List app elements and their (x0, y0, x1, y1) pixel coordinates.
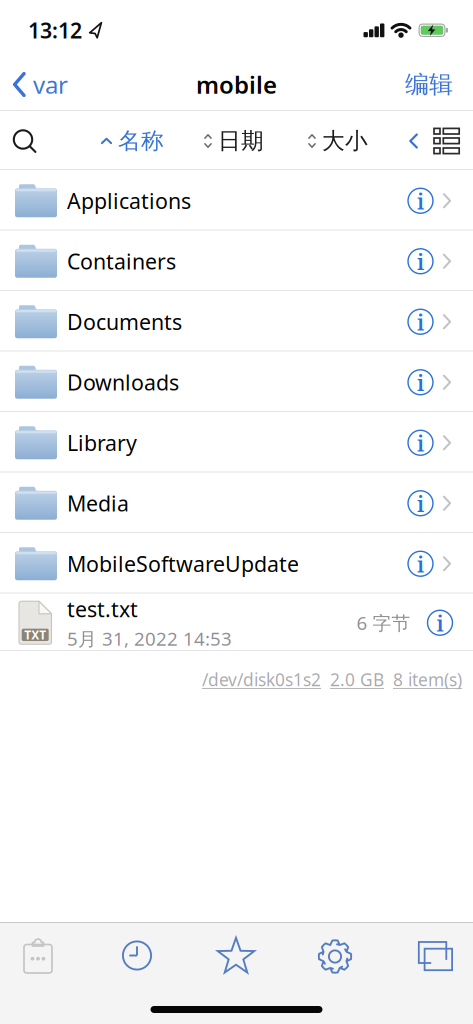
button[interactable] (319, 937, 351, 973)
staticText: 大小 (322, 127, 368, 155)
button[interactable] (121, 937, 153, 973)
staticText: Applications (67, 187, 191, 215)
staticText: 13:12 (28, 16, 82, 44)
staticText: test.txt (67, 595, 138, 623)
button[interactable]: 2.0 GB (330, 668, 384, 691)
staticText: i (417, 247, 424, 276)
staticText: Documents (67, 308, 182, 336)
button[interactable]: /dev/disk0s1s2 (202, 668, 321, 691)
button[interactable]: TXT (0, 594, 473, 651)
staticText: i (417, 429, 424, 458)
button[interactable]: i (427, 610, 452, 635)
staticText: i (436, 609, 443, 638)
staticText: Media (67, 489, 129, 517)
staticText: Downloads (67, 368, 179, 396)
staticText: i (417, 550, 424, 579)
button[interactable]: var (13, 69, 68, 100)
button[interactable] (418, 937, 450, 973)
staticText: /dev/disk0s1s2 (202, 668, 321, 691)
button[interactable]: i (408, 430, 433, 455)
staticText: 5月 31, 2022 14:53 (67, 626, 232, 651)
button[interactable] (409, 133, 418, 148)
button[interactable]: Media (0, 473, 473, 533)
button[interactable]: Downloads (0, 352, 473, 412)
staticText: TXT (24, 627, 46, 643)
button[interactable]: i (408, 551, 433, 576)
button[interactable]: Containers (0, 231, 473, 291)
staticText: 编辑 (405, 70, 453, 99)
button[interactable]: Documents (0, 291, 473, 352)
button[interactable]: i (408, 491, 433, 516)
staticText: 名称 (118, 127, 164, 155)
button[interactable]: 名称 (101, 127, 164, 155)
staticText: Containers (67, 247, 176, 275)
button[interactable]: 大小 (308, 127, 368, 155)
button[interactable] (433, 127, 460, 154)
staticText: i (417, 308, 424, 337)
button[interactable]: Applications (0, 170, 473, 231)
button[interactable] (13, 129, 36, 152)
button[interactable]: i (408, 370, 433, 395)
staticText: 8 item(s) (393, 668, 462, 691)
staticText: 6 字节 (356, 610, 410, 635)
button[interactable]: 日期 (204, 127, 264, 155)
staticText: 日期 (218, 127, 264, 155)
button[interactable] (220, 937, 252, 973)
button[interactable]: i (408, 249, 433, 274)
staticText: MobileSoftwareUpdate (67, 550, 299, 578)
staticText: mobile (196, 69, 277, 100)
staticText: i (417, 368, 424, 397)
button[interactable]: i (408, 309, 433, 334)
staticText: 2.0 GB (330, 668, 384, 691)
button[interactable]: MobileSoftwareUpdate (0, 533, 473, 594)
button[interactable]: 编辑 (405, 70, 453, 99)
staticText: var (33, 69, 68, 100)
button[interactable] (22, 937, 54, 973)
staticText: i (417, 187, 424, 216)
button[interactable]: i (408, 188, 433, 213)
button[interactable]: 8 item(s) (393, 668, 462, 691)
staticText: i (417, 489, 424, 518)
staticText: Library (67, 429, 137, 457)
button[interactable]: Library (0, 412, 473, 473)
